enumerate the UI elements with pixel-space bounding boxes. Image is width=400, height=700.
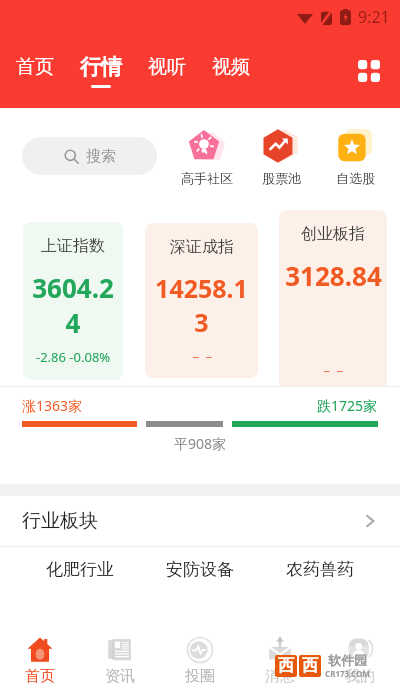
button[interactable]: 行业板块: [0, 496, 400, 546]
button[interactable]: 我的: [320, 622, 400, 700]
staticText: 首页: [16, 55, 54, 79]
staticText: 西: [302, 656, 318, 676]
button[interactable]: 视频: [210, 55, 252, 87]
staticText: 视频: [212, 55, 250, 79]
button[interactable]: 上证指数: [23, 222, 123, 380]
staticText: -2.86 -0.08%: [36, 348, 111, 366]
staticText: 创业板指: [301, 224, 365, 244]
staticText: 上证指数: [41, 236, 105, 256]
button[interactable]: 消息: [240, 622, 320, 700]
staticText: 涨1363家: [22, 396, 83, 415]
button[interactable]: More apps: [352, 54, 386, 88]
button[interactable]: 化肥行业: [20, 559, 140, 580]
staticText: 农药兽药: [286, 559, 354, 580]
button[interactable]: 首页: [0, 622, 80, 700]
button[interactable]: 安防设备: [140, 559, 260, 580]
staticText: 首页: [25, 667, 55, 686]
staticText: 行业板块: [22, 509, 98, 533]
button[interactable]: 深证成指: [145, 223, 258, 378]
button[interactable]: 首页: [14, 55, 56, 87]
button[interactable]: 行情: [78, 54, 124, 88]
staticText: 深证成指: [170, 237, 234, 257]
staticText: 自选股: [336, 170, 375, 186]
staticText: 行情: [80, 54, 122, 80]
staticText: 14258.13: [149, 271, 254, 339]
button[interactable]: 资讯: [80, 622, 160, 700]
staticText: 资讯: [105, 667, 135, 686]
button[interactable]: 搜索: [22, 137, 157, 175]
button[interactable]: 投圈: [160, 622, 240, 700]
staticText: 3128.84: [285, 258, 382, 293]
staticText: 9:21: [358, 6, 390, 28]
staticText: 投圈: [185, 667, 215, 686]
staticText: Cr: [243, 648, 272, 683]
staticText: 跌1725家: [317, 396, 378, 415]
staticText: 股票池: [262, 170, 301, 186]
button[interactable]: 股票池: [250, 127, 312, 186]
staticText: 高手社区: [181, 170, 233, 186]
staticText: CR173.COM: [325, 668, 370, 679]
button[interactable]: 高手社区: [176, 127, 238, 186]
staticText: 西: [278, 656, 294, 676]
staticText: 我的: [345, 667, 375, 686]
button[interactable]: 视听: [146, 55, 188, 87]
staticText: 软件园: [328, 652, 367, 668]
button[interactable]: 创业板指: [279, 210, 387, 392]
staticText: 平908家: [174, 434, 227, 453]
staticText: 安防设备: [166, 559, 234, 580]
staticText: 化肥行业: [46, 559, 114, 580]
button[interactable]: 自选股: [324, 127, 386, 186]
staticText: －－: [320, 362, 346, 378]
staticText: 3604.24: [27, 270, 119, 340]
button[interactable]: 农药兽药: [260, 559, 380, 580]
staticText: －－: [189, 348, 215, 364]
staticText: 视听: [148, 55, 186, 79]
staticText: 消息: [265, 667, 295, 686]
staticText: 搜索: [86, 147, 116, 166]
